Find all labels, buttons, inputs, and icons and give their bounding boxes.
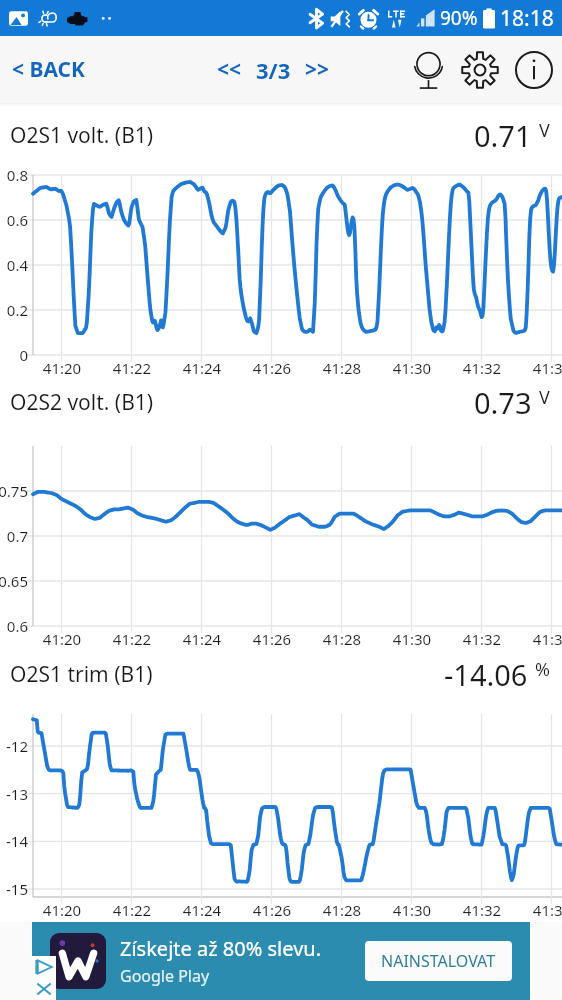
staticText: % bbox=[535, 657, 550, 682]
staticText: 41:30 bbox=[386, 358, 438, 378]
staticText: -13 bbox=[6, 784, 28, 804]
staticText: 41:20 bbox=[36, 358, 88, 378]
staticText: 0.6 bbox=[6, 210, 28, 230]
button[interactable]: Settings bbox=[456, 42, 504, 98]
staticText: 41:26 bbox=[246, 900, 298, 920]
staticText: 41:26 bbox=[246, 629, 298, 649]
staticText: 41:34 bbox=[526, 358, 562, 378]
staticText: 0.8 bbox=[6, 165, 28, 185]
staticText: 0.7 bbox=[6, 526, 28, 546]
staticText: 3/3 bbox=[256, 55, 291, 85]
staticText: 41:28 bbox=[316, 358, 368, 378]
staticText: 41:20 bbox=[36, 900, 88, 920]
button[interactable]: < BACK bbox=[0, 41, 97, 98]
staticText: 41:26 bbox=[246, 358, 298, 378]
button[interactable]: Voice search bbox=[407, 41, 450, 99]
staticText: 0.75 bbox=[0, 481, 28, 501]
staticText: 0.2 bbox=[6, 300, 28, 320]
staticText: Google Play bbox=[120, 965, 210, 987]
staticText: << bbox=[217, 55, 242, 84]
staticText: -14 bbox=[6, 831, 28, 851]
staticText: 41:20 bbox=[36, 629, 88, 649]
button[interactable]: NAINSTALOVAT bbox=[365, 941, 512, 981]
staticText: 18:18 bbox=[500, 4, 554, 33]
staticText: -14.06 bbox=[444, 655, 528, 694]
staticText: < BACK bbox=[12, 55, 85, 84]
staticText: 0.4 bbox=[6, 255, 28, 275]
staticText: 41:32 bbox=[456, 629, 508, 649]
staticText: 41:32 bbox=[456, 358, 508, 378]
staticText: 41:24 bbox=[176, 629, 228, 649]
staticText: >> bbox=[305, 55, 330, 84]
staticText: 0 bbox=[19, 345, 28, 365]
staticText: Získejte až 80% slevu. bbox=[120, 935, 322, 962]
staticText: -15 bbox=[6, 879, 28, 899]
staticText: 41:28 bbox=[316, 900, 368, 920]
staticText: 90% bbox=[440, 5, 478, 31]
staticText: O2S2 volt. (B1) bbox=[10, 388, 154, 417]
staticText: 41:24 bbox=[176, 358, 228, 378]
staticText: V bbox=[539, 118, 550, 143]
staticText: V bbox=[539, 385, 550, 410]
staticText: 0.65 bbox=[0, 571, 28, 591]
staticText: O2S1 volt. (B1) bbox=[10, 121, 154, 150]
staticText: -12 bbox=[6, 736, 28, 756]
button[interactable]: >> bbox=[298, 41, 337, 98]
staticText: O2S1 trim (B1) bbox=[10, 660, 153, 689]
staticText: 41:34 bbox=[526, 900, 562, 920]
staticText: NAINSTALOVAT bbox=[381, 950, 496, 972]
staticText: 0.71 bbox=[474, 116, 532, 155]
staticText: 41:28 bbox=[316, 629, 368, 649]
button[interactable]: Získejte až 80% slevu. bbox=[32, 922, 530, 1000]
staticText: 41:30 bbox=[386, 900, 438, 920]
staticText: 41:24 bbox=[176, 900, 228, 920]
staticText: 0.73 bbox=[474, 383, 532, 422]
button[interactable]: Info bbox=[510, 42, 558, 98]
staticText: 41:32 bbox=[456, 900, 508, 920]
staticText: 41:22 bbox=[106, 358, 158, 378]
staticText: 0.6 bbox=[6, 616, 28, 636]
staticText: 41:22 bbox=[106, 629, 158, 649]
staticText: 41:22 bbox=[106, 900, 158, 920]
staticText: 41:30 bbox=[386, 629, 438, 649]
staticText: 41:34 bbox=[526, 629, 562, 649]
button[interactable]: << bbox=[210, 41, 249, 98]
